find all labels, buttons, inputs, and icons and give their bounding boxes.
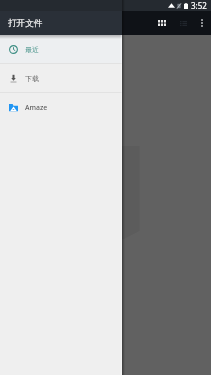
staticText: 3:52 — [191, 0, 207, 11]
button[interactable]: 最近 — [0, 35, 122, 63]
staticText: Amaze — [25, 103, 48, 112]
staticText: 最近 — [25, 45, 39, 54]
staticText: 打开文件 — [8, 18, 43, 29]
staticText: 下载 — [25, 74, 39, 83]
button[interactable]: 下载 — [0, 64, 122, 92]
button[interactable]: Amaze — [0, 93, 122, 121]
button[interactable]: List view — [175, 11, 191, 35]
button[interactable]: More options — [195, 11, 208, 35]
button[interactable]: Grid view — [154, 11, 170, 35]
